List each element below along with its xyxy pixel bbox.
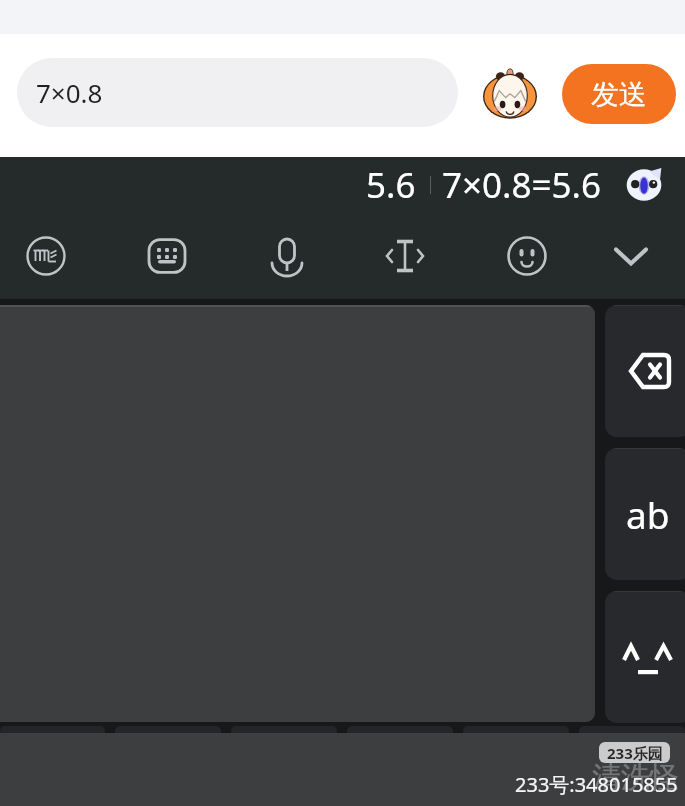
button[interactable]: Voice input bbox=[243, 213, 331, 299]
staticText: 233乐园 bbox=[607, 743, 663, 763]
button[interactable]: Key bbox=[579, 726, 685, 736]
button[interactable]: Emoji bbox=[479, 213, 575, 299]
button[interactable]: Key bbox=[347, 726, 453, 736]
button[interactable]: Sticker bbox=[482, 68, 538, 124]
button[interactable]: Keyboard layout bbox=[91, 213, 243, 299]
button[interactable]: Move cursor bbox=[331, 213, 479, 299]
button[interactable]: Delete bbox=[605, 305, 685, 437]
button[interactable]: 7×0.8=5.6 bbox=[434, 157, 608, 213]
button[interactable]: 7×0.8 bbox=[17, 58, 458, 127]
button[interactable]: 发送 bbox=[562, 64, 676, 124]
button[interactable]: Key bbox=[0, 726, 105, 736]
staticText: 发送 bbox=[591, 77, 647, 112]
staticText: ab bbox=[626, 489, 670, 539]
staticText: 清洗怪 bbox=[592, 759, 679, 796]
button[interactable]: ab bbox=[605, 448, 685, 580]
button[interactable]: 5.6 bbox=[355, 157, 427, 213]
staticText: 7×0.8=5.6 bbox=[442, 161, 601, 209]
button[interactable]: Input method bbox=[0, 213, 91, 299]
button[interactable]: Emoticon bbox=[605, 591, 685, 723]
button[interactable]: Key bbox=[231, 726, 337, 736]
button[interactable]: Key bbox=[463, 726, 569, 736]
button[interactable]: Key bbox=[115, 726, 221, 736]
staticText: 7×0.8 bbox=[36, 75, 103, 110]
button[interactable]: 233乐园 bbox=[599, 742, 670, 763]
staticText: 5.6 bbox=[366, 161, 416, 209]
staticText: 233号:348015855 bbox=[515, 771, 678, 798]
button[interactable]: Hide keyboard bbox=[575, 213, 685, 299]
button[interactable]: Assistant bbox=[625, 166, 663, 204]
